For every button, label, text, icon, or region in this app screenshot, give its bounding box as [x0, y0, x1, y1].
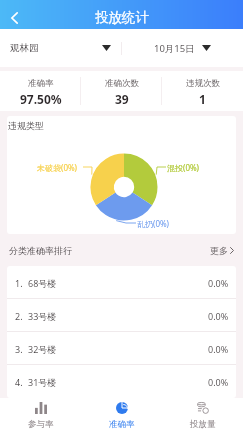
button[interactable]: 1.	[7, 266, 236, 299]
button[interactable]: 更多	[201, 245, 243, 256]
staticText: 分类准确率排行	[9, 245, 72, 256]
button[interactable]: 10月15日	[121, 29, 243, 67]
staticText: 0.0%	[208, 376, 229, 388]
staticText: 68号楼	[28, 277, 208, 289]
staticText: 未破袋(0%)	[37, 162, 78, 173]
staticText: 观林园	[10, 42, 39, 54]
button[interactable]: 准确次数	[81, 71, 162, 111]
staticText: 10月15日	[154, 42, 195, 55]
staticText: 投放统计	[95, 9, 149, 26]
staticText: 31号楼	[28, 376, 208, 388]
staticText: 1	[199, 91, 206, 107]
staticText: 准确次数	[105, 78, 139, 89]
button[interactable]: 3.	[7, 332, 236, 365]
button[interactable]: 准确率	[81, 398, 162, 432]
staticText: 39	[115, 91, 129, 107]
staticText: 违规次数	[186, 78, 220, 89]
staticText: 参与率	[28, 419, 54, 430]
staticText: 2.	[15, 310, 23, 322]
staticText: 准确率	[109, 419, 135, 430]
staticText: 投放量	[190, 419, 216, 430]
staticText: 更多	[210, 245, 228, 256]
staticText: 乱扔(0%)	[137, 218, 170, 229]
button[interactable]: 观林园	[0, 29, 117, 67]
staticText: 0.0%	[208, 277, 229, 289]
staticText: 4.	[15, 376, 23, 388]
button[interactable]: 参与率	[0, 398, 81, 432]
staticText: 3.	[15, 343, 23, 355]
button[interactable]: 违规次数	[162, 71, 243, 111]
staticText: 33号楼	[28, 310, 208, 322]
staticText: 0.0%	[208, 310, 229, 322]
button[interactable]: Back	[0, 6, 29, 29]
button[interactable]: 投放量	[162, 398, 243, 432]
button[interactable]: 准确率	[0, 71, 81, 111]
staticText: 准确率	[28, 78, 54, 89]
staticText: 97.50%	[20, 91, 62, 107]
staticText: 混投(0%)	[167, 162, 200, 173]
staticText: 32号楼	[28, 343, 208, 355]
button[interactable]: 4.	[7, 365, 236, 398]
button[interactable]: 2.	[7, 299, 236, 332]
staticText: 违规类型	[8, 120, 44, 131]
staticText: 1.	[15, 277, 23, 289]
staticText: 0.0%	[208, 343, 229, 355]
